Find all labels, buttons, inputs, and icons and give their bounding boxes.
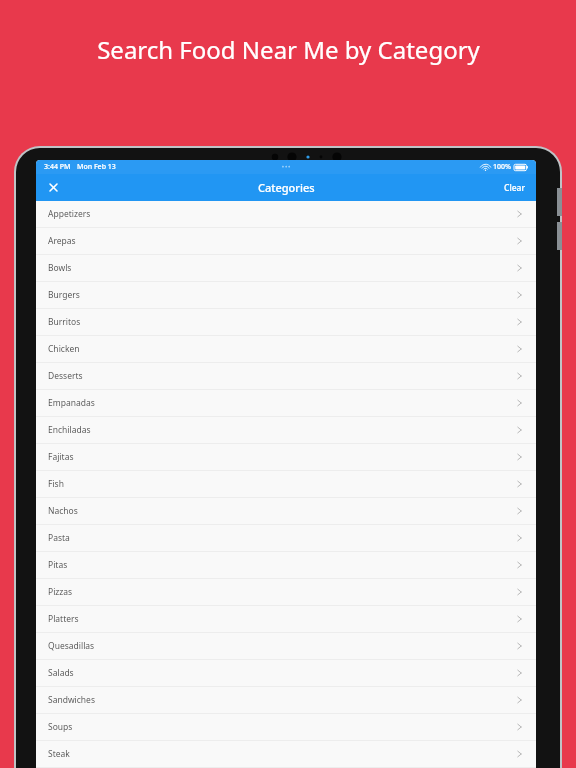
button[interactable]: Pizzas (36, 579, 536, 606)
button[interactable]: Fajitas (36, 444, 536, 471)
staticText: Burgers (48, 289, 80, 301)
button[interactable]: Soups (36, 714, 536, 741)
button[interactable]: Steak (36, 741, 536, 768)
button[interactable]: Fish (36, 471, 536, 498)
button[interactable]: Nachos (36, 498, 536, 525)
staticText: Pasta (48, 532, 70, 544)
staticText: Categories (258, 180, 315, 195)
staticText: Burritos (48, 316, 81, 328)
button[interactable]: Sandwiches (36, 687, 536, 714)
staticText: Desserts (48, 370, 83, 382)
button[interactable]: Burritos (36, 309, 536, 336)
staticText: Arepas (48, 235, 76, 247)
staticText: Nachos (48, 505, 78, 517)
staticText: Pitas (48, 559, 68, 571)
button[interactable]: Desserts (36, 363, 536, 390)
staticText: Fish (48, 478, 64, 490)
staticText: Chicken (48, 343, 80, 355)
button[interactable]: Enchiladas (36, 417, 536, 444)
staticText: Quesadillas (48, 640, 95, 652)
staticText: 3:44 PM (44, 162, 71, 172)
button[interactable]: Pitas (36, 552, 536, 579)
staticText: Fajitas (48, 451, 74, 463)
staticText: • • • (282, 164, 291, 171)
button[interactable]: Platters (36, 606, 536, 633)
button[interactable]: Bowls (36, 255, 536, 282)
staticText: 100% (493, 162, 511, 172)
staticText: Platters (48, 613, 79, 625)
button[interactable]: Quesadillas (36, 633, 536, 660)
staticText: Pizzas (48, 586, 73, 598)
button[interactable]: Burgers (36, 282, 536, 309)
staticText: Clear (504, 182, 526, 194)
button[interactable]: Chicken (36, 336, 536, 363)
button[interactable]: Appetizers (36, 201, 536, 228)
staticText: Search Food Near Me by Category (97, 33, 480, 66)
button[interactable]: Clear (494, 174, 536, 201)
staticText: Mon Feb 13 (77, 162, 116, 172)
staticText: Soups (48, 721, 73, 733)
staticText: Appetizers (48, 208, 91, 220)
staticText: Empanadas (48, 397, 95, 409)
staticText: Sandwiches (48, 694, 95, 706)
button[interactable]: Arepas (36, 228, 536, 255)
button[interactable]: Empanadas (36, 390, 536, 417)
staticText: Enchiladas (48, 424, 91, 436)
staticText: Salads (48, 667, 74, 679)
button[interactable]: Pasta (36, 525, 536, 552)
button[interactable]: Close (36, 174, 70, 201)
staticText: Steak (48, 748, 70, 760)
button[interactable]: Salads (36, 660, 536, 687)
staticText: Bowls (48, 262, 72, 274)
